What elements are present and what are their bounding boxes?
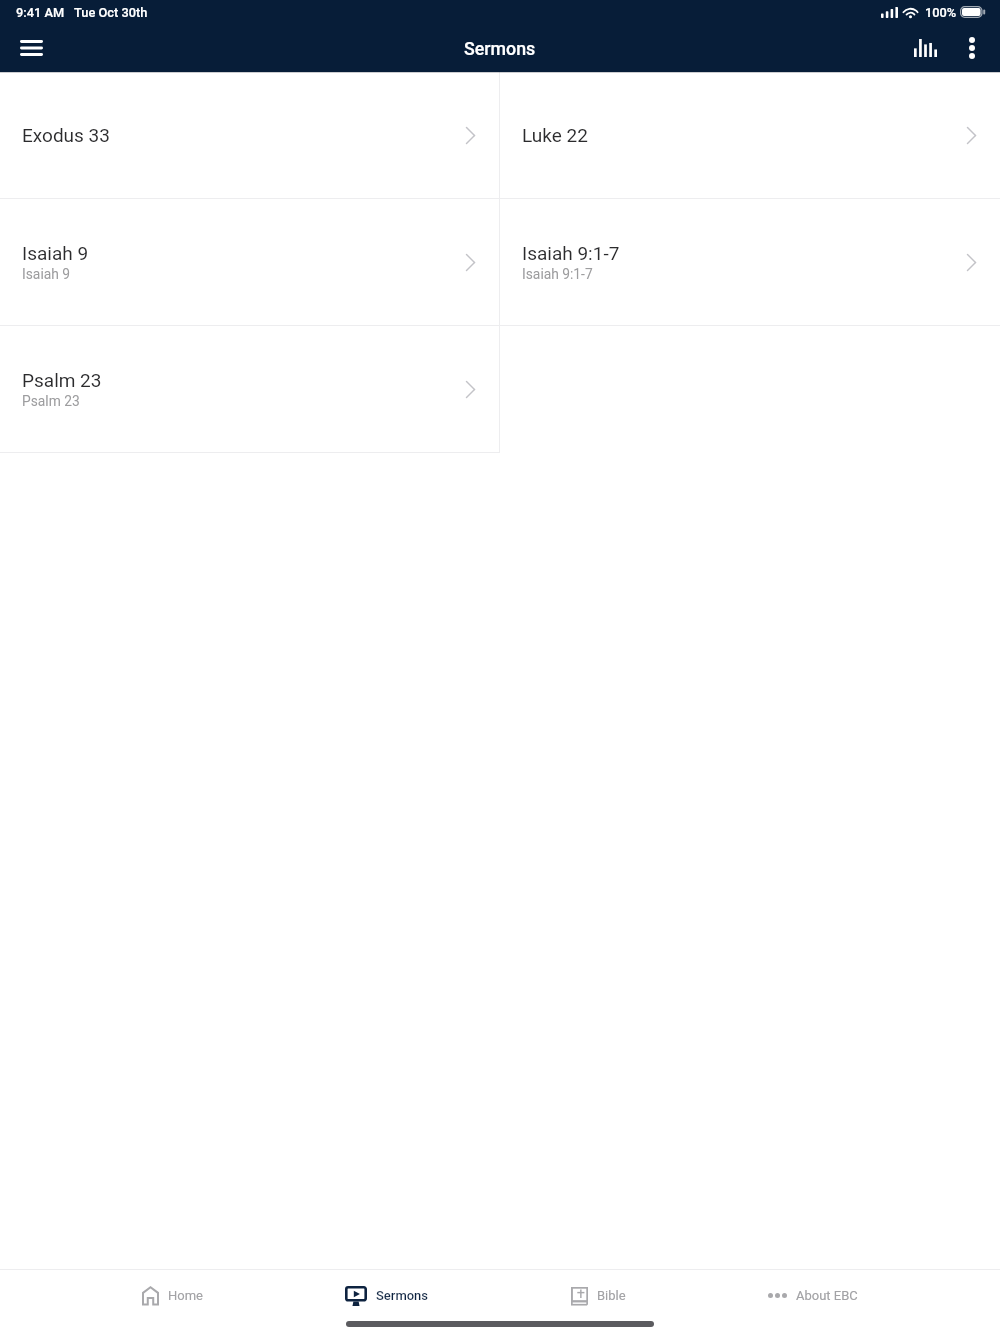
button[interactable]: Open navigation menu [7, 24, 55, 72]
staticText: Psalm 23 [22, 393, 80, 409]
button[interactable]: Isaiah 9 [0, 199, 499, 325]
staticText: Sermons [464, 38, 536, 59]
button[interactable]: Equalizer [901, 24, 949, 72]
button[interactable]: Psalm 23 [0, 326, 499, 452]
staticText: Psalm 23 [22, 369, 102, 391]
button[interactable]: Sermons [345, 1277, 429, 1314]
button[interactable]: Exodus 33 [0, 72, 499, 198]
button[interactable]: Home [142, 1277, 203, 1314]
button[interactable]: Isaiah 9:1-7 [500, 199, 1000, 325]
button[interactable]: Bible [571, 1277, 626, 1314]
staticText: Luke 22 [522, 124, 588, 146]
button[interactable]: More options [957, 24, 986, 72]
staticText: Tue Oct 30th [74, 5, 148, 20]
staticText: Isaiah 9:1-7 [522, 266, 593, 282]
staticText: Sermons [376, 1288, 429, 1303]
staticText: Exodus 33 [22, 124, 110, 146]
staticText: Isaiah 9 [22, 242, 89, 264]
staticText: Isaiah 9:1-7 [522, 242, 620, 264]
staticText: 100% [925, 5, 957, 20]
button[interactable]: Luke 22 [500, 72, 1000, 198]
staticText: Bible [597, 1288, 626, 1303]
button[interactable]: About EBC [768, 1277, 858, 1314]
staticText: Home [168, 1288, 203, 1303]
staticText: 9:41 AM [16, 5, 65, 20]
staticText: About EBC [796, 1288, 858, 1303]
staticText: Isaiah 9 [22, 266, 71, 282]
